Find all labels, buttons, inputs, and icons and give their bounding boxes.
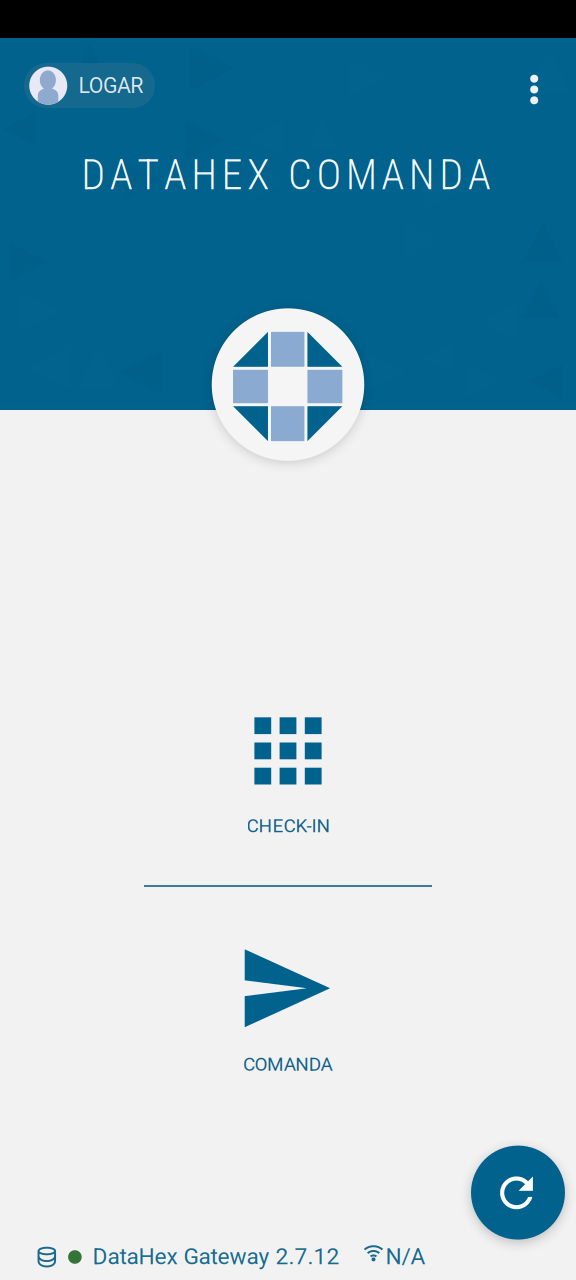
button[interactable]: LOGAR bbox=[24, 63, 155, 108]
staticText: A bbox=[110, 150, 133, 200]
staticText: A bbox=[164, 150, 187, 200]
staticText: D bbox=[81, 150, 105, 200]
staticText: N bbox=[409, 150, 435, 200]
staticText: COMANDA bbox=[243, 1053, 332, 1075]
staticText: LOGAR bbox=[79, 73, 143, 98]
button[interactable]: CHECK-IN bbox=[144, 706, 432, 852]
staticText: X bbox=[247, 150, 270, 200]
staticText: E bbox=[222, 150, 243, 200]
staticText: O bbox=[316, 150, 341, 200]
staticText: CHECK-IN bbox=[246, 815, 330, 837]
button[interactable]: COMANDA bbox=[144, 932, 432, 1092]
staticText: A bbox=[381, 150, 404, 200]
staticText: DataHex Gateway 2.7.12 bbox=[92, 1243, 339, 1270]
staticText: T bbox=[137, 150, 159, 200]
staticText: M bbox=[346, 150, 377, 200]
button[interactable]: More options bbox=[510, 65, 558, 113]
staticText: D bbox=[439, 150, 463, 200]
button[interactable]: Refresh bbox=[471, 1146, 565, 1240]
staticText: H bbox=[191, 150, 217, 200]
staticText: A bbox=[468, 150, 491, 200]
staticText: C bbox=[288, 150, 312, 200]
staticText: N/A bbox=[385, 1243, 425, 1270]
